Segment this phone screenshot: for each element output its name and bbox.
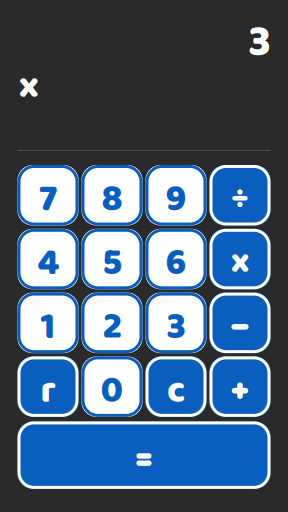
staticText: 8	[101, 170, 122, 228]
staticText: 0	[100, 361, 123, 419]
button[interactable]: Recall	[17, 356, 78, 417]
staticText: 3	[248, 9, 270, 75]
button[interactable]: Add	[209, 356, 270, 417]
button[interactable]: Multiply	[209, 229, 270, 289]
button[interactable]: 7	[17, 165, 78, 225]
staticText: 3	[166, 297, 185, 356]
staticText: 9	[165, 170, 186, 228]
button[interactable]: 0	[81, 356, 142, 417]
staticText: r	[40, 361, 55, 419]
staticText: 1	[40, 297, 55, 356]
staticText: 4	[37, 233, 59, 292]
button[interactable]: Clear	[145, 356, 206, 417]
button[interactable]: 2	[81, 293, 142, 353]
button[interactable]: Equals	[17, 421, 270, 489]
staticText: x	[231, 234, 249, 288]
button[interactable]: 6	[145, 229, 206, 289]
button[interactable]: 9	[145, 165, 206, 225]
staticText: 5	[102, 233, 121, 292]
staticText: x	[19, 56, 39, 114]
button[interactable]: 5	[81, 229, 142, 289]
staticText: 6	[165, 233, 186, 292]
staticText: c	[167, 361, 185, 419]
staticText: 2	[102, 297, 121, 356]
staticText: 7	[39, 170, 57, 228]
button[interactable]: Subtract	[209, 293, 270, 353]
button[interactable]: 1	[17, 293, 78, 353]
button[interactable]: 8	[81, 165, 142, 225]
button[interactable]: 4	[17, 229, 78, 289]
button[interactable]: 3	[145, 293, 206, 353]
button[interactable]: Divide	[209, 165, 270, 225]
